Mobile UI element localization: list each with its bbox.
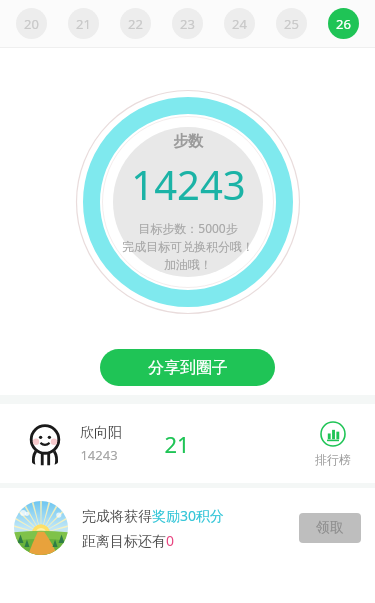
staticText: 24	[232, 15, 247, 33]
button[interactable]: 排行榜	[303, 417, 363, 471]
staticText: 目标步数：5000步	[138, 220, 238, 236]
button[interactable]: 24	[224, 8, 255, 39]
staticText: 步数	[173, 132, 203, 151]
button[interactable]: 25	[276, 8, 307, 39]
staticText: 21	[76, 15, 91, 33]
staticText: 分享到圈子	[148, 358, 228, 378]
staticText: 领取	[316, 519, 344, 537]
button[interactable]: 分享到圈子	[100, 349, 275, 386]
button[interactable]: 欣向阳	[0, 404, 375, 483]
button[interactable]: 22	[120, 8, 151, 39]
button[interactable]: 20	[16, 8, 47, 39]
staticText: 14243	[131, 157, 246, 211]
button[interactable]: 23	[172, 8, 203, 39]
staticText: 20	[24, 15, 39, 33]
staticText: 14243	[80, 446, 118, 464]
staticText: 排行榜	[315, 452, 351, 467]
button[interactable]: 21	[68, 8, 99, 39]
staticText: 22	[128, 15, 143, 33]
button[interactable]: 领取	[299, 513, 361, 543]
staticText: 完成目标可兑换积分哦！	[122, 239, 254, 254]
staticText: 23	[180, 15, 195, 33]
staticText: 完成将获得奖励30积分	[82, 506, 225, 525]
button[interactable]: 26	[328, 8, 359, 39]
staticText: 25	[284, 15, 299, 33]
staticText: 21	[164, 429, 190, 459]
staticText: 欣向阳	[80, 424, 122, 442]
staticText: 26	[336, 15, 351, 33]
staticText: 加油哦！	[164, 257, 212, 272]
staticText: 距离目标还有0	[82, 531, 175, 550]
